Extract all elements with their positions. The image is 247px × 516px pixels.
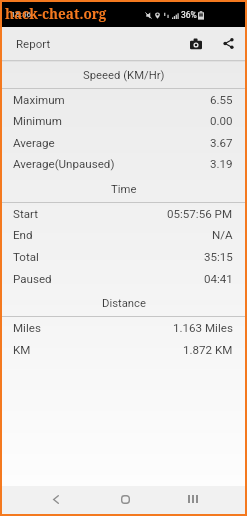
button[interactable]: Back xyxy=(39,486,73,514)
button[interactable]: Minimum xyxy=(2,110,245,132)
button[interactable]: Average xyxy=(2,132,245,154)
button[interactable]: Share xyxy=(212,27,245,60)
staticText: 35:15 xyxy=(204,250,233,264)
button[interactable]: Maximum xyxy=(2,89,245,111)
button[interactable]: Take screenshot xyxy=(179,27,212,60)
button[interactable]: Paused xyxy=(2,268,245,290)
staticText: End xyxy=(13,228,33,242)
staticText: 36% xyxy=(181,10,197,20)
staticText: 05:57:56 PM xyxy=(167,207,233,221)
staticText: hack-cheat.org xyxy=(5,5,107,23)
staticText: Average(Unpaused) xyxy=(13,157,115,171)
staticText: Minimum xyxy=(13,114,62,128)
staticText: 3.19 xyxy=(210,157,233,171)
staticText: Distance xyxy=(102,297,146,310)
button[interactable]: Total xyxy=(2,246,245,268)
button[interactable]: Average(Unpaused) xyxy=(2,153,245,175)
staticText: 3.67 xyxy=(210,136,233,150)
staticText: Maximum xyxy=(13,93,65,107)
staticText: Paused xyxy=(13,272,52,286)
staticText: 6.55 xyxy=(210,93,233,107)
staticText: 04:41 xyxy=(204,272,233,286)
button[interactable]: KM xyxy=(2,339,245,361)
staticText: Start xyxy=(13,207,38,221)
staticText: Total xyxy=(13,250,39,264)
staticText: 0.00 xyxy=(210,114,233,128)
staticText: 16:56 xyxy=(11,10,31,19)
staticText: Report xyxy=(16,37,51,50)
button[interactable]: Recents xyxy=(176,486,210,514)
staticText: KM xyxy=(13,343,31,357)
staticText: Miles xyxy=(13,321,41,335)
button[interactable]: Start xyxy=(2,203,245,225)
staticText: 1.163 Miles xyxy=(173,321,233,335)
staticText: Average xyxy=(13,136,55,150)
staticText: 1.872 KM xyxy=(183,343,233,357)
button[interactable]: Miles xyxy=(2,317,245,339)
button[interactable]: End xyxy=(2,224,245,246)
staticText: Speeed (KM/Hr) xyxy=(83,69,165,82)
staticText: N/A xyxy=(212,228,233,242)
button[interactable]: Home xyxy=(108,486,142,514)
staticText: Time xyxy=(111,183,137,196)
